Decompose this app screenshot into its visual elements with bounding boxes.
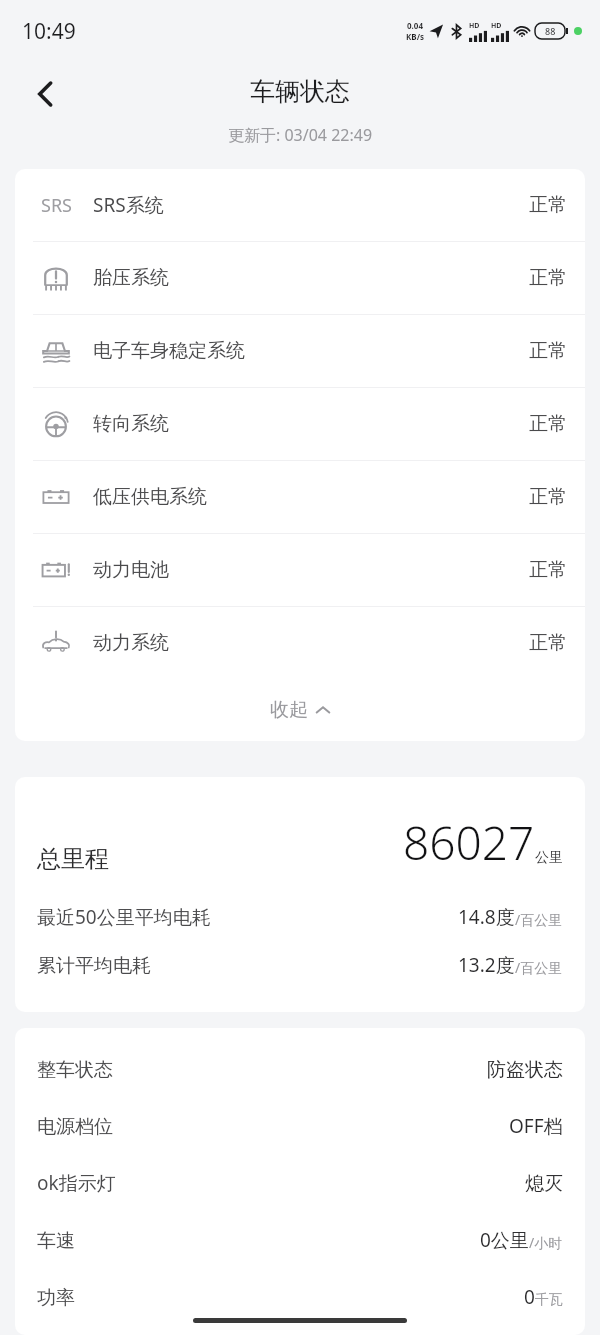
staticText: 电子车身稳定系统 bbox=[93, 339, 245, 363]
staticText: 累计平均电耗 bbox=[37, 954, 151, 978]
staticText: 功率 bbox=[37, 1286, 75, 1310]
staticText: 更新于: 03/04 22:49 bbox=[228, 124, 373, 146]
staticText: /小时 bbox=[529, 1233, 563, 1252]
staticText: 正常 bbox=[529, 631, 567, 655]
staticText: ok指示灯 bbox=[37, 1170, 116, 1196]
staticText: 88 bbox=[545, 25, 556, 37]
staticText: HD bbox=[469, 21, 480, 31]
staticText: 总里程 bbox=[37, 844, 109, 874]
staticText: 0公里 bbox=[480, 1227, 529, 1253]
button[interactable]: 动力电池 bbox=[15, 534, 585, 606]
staticText: 低压供电系统 bbox=[93, 485, 207, 509]
staticText: 防盗状态 bbox=[487, 1058, 563, 1082]
button[interactable]: Back bbox=[18, 66, 74, 122]
staticText: 车速 bbox=[37, 1229, 75, 1253]
staticText: 正常 bbox=[529, 339, 567, 363]
staticText: HD bbox=[491, 21, 502, 31]
staticText: 最近50公里平均电耗 bbox=[37, 904, 211, 930]
staticText: SRS系统 bbox=[93, 192, 164, 218]
staticText: 14.8度 bbox=[458, 904, 515, 930]
staticText: 整车状态 bbox=[37, 1058, 113, 1082]
staticText: 公里 bbox=[535, 849, 563, 867]
staticText: 正常 bbox=[529, 193, 567, 217]
staticText: 正常 bbox=[529, 412, 567, 436]
staticText: 0.04 bbox=[407, 20, 423, 31]
staticText: 转向系统 bbox=[93, 412, 169, 436]
button[interactable]: 收起 bbox=[15, 679, 585, 741]
staticText: 千瓦 bbox=[535, 1291, 563, 1309]
staticText: 13.2度 bbox=[458, 952, 515, 978]
staticText: /百公里 bbox=[515, 958, 563, 977]
staticText: 86027 bbox=[403, 811, 535, 874]
staticText: 正常 bbox=[529, 266, 567, 290]
staticText: 10:49 bbox=[22, 17, 76, 46]
staticText: 车辆状态 bbox=[250, 76, 350, 107]
staticText: 动力电池 bbox=[93, 558, 169, 582]
staticText: /百公里 bbox=[515, 910, 563, 929]
button[interactable]: 动力系统 bbox=[15, 607, 585, 679]
staticText: 动力系统 bbox=[93, 631, 169, 655]
staticText: 收起 bbox=[270, 698, 308, 722]
button[interactable]: 转向系统 bbox=[15, 388, 585, 460]
staticText: 正常 bbox=[529, 485, 567, 509]
staticText: SRS bbox=[41, 193, 72, 218]
staticText: 电源档位 bbox=[37, 1115, 113, 1139]
button[interactable]: 电子车身稳定系统 bbox=[15, 315, 585, 387]
staticText: 熄灭 bbox=[525, 1172, 563, 1196]
staticText: 胎压系统 bbox=[93, 266, 169, 290]
staticText: 正常 bbox=[529, 558, 567, 582]
staticText: KB/s bbox=[406, 31, 424, 42]
button[interactable]: SRS bbox=[15, 169, 585, 241]
staticText: OFF档 bbox=[509, 1113, 563, 1139]
button[interactable]: 胎压系统 bbox=[15, 242, 585, 314]
button[interactable]: 低压供电系统 bbox=[15, 461, 585, 533]
staticText: 0 bbox=[524, 1284, 535, 1310]
